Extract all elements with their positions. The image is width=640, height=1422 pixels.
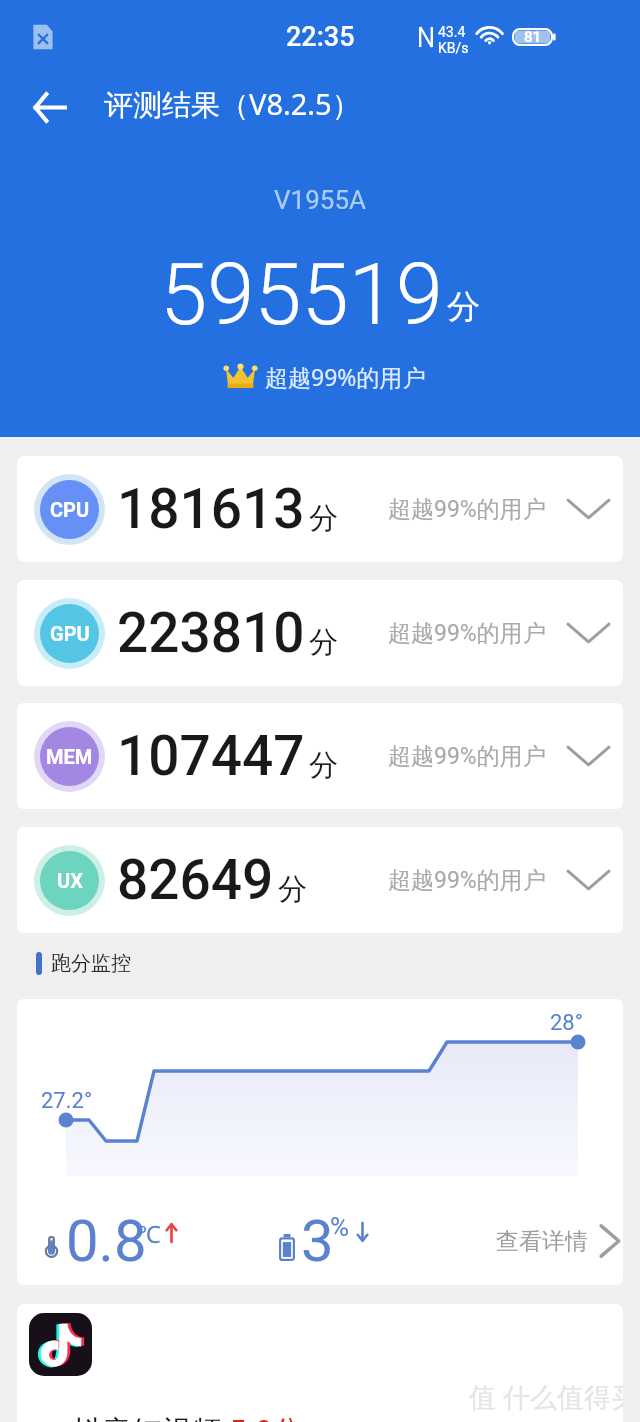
staticText: ℃ bbox=[137, 1217, 161, 1250]
staticText: 分 bbox=[309, 747, 338, 784]
staticText: 超越99%的用户 bbox=[388, 866, 546, 895]
staticText: 81 bbox=[524, 28, 542, 46]
button[interactable]: UX bbox=[17, 827, 623, 933]
staticText: 分 bbox=[309, 500, 338, 537]
button[interactable]: CPU bbox=[17, 456, 623, 562]
button[interactable]: MEM bbox=[17, 703, 623, 809]
staticText: V1955A bbox=[274, 185, 366, 215]
button[interactable]: 查看详情 bbox=[490, 1219, 623, 1263]
staticText: GPU bbox=[50, 622, 90, 645]
staticText: 超越99%的用户 bbox=[265, 361, 426, 392]
staticText: 查看详情 bbox=[496, 1227, 588, 1256]
staticText: CPU bbox=[50, 498, 90, 521]
staticText: 107447 bbox=[117, 724, 305, 788]
staticText: 28° bbox=[550, 1010, 583, 1036]
staticText: 82649 bbox=[117, 848, 274, 912]
staticText: 5.0分 bbox=[230, 1410, 303, 1422]
staticText: MEM bbox=[46, 745, 93, 768]
staticText: 超越99%的用户 bbox=[388, 495, 546, 524]
staticText: 3 bbox=[301, 1207, 334, 1275]
staticText: 分 bbox=[278, 871, 307, 908]
staticText: 27.2° bbox=[41, 1088, 93, 1114]
button[interactable]: Back bbox=[14, 72, 84, 142]
staticText: 181613 bbox=[117, 477, 305, 541]
staticText: 分 bbox=[309, 624, 338, 661]
staticText: KB/s bbox=[438, 40, 469, 56]
staticText: 22:35 bbox=[286, 21, 355, 53]
staticText: 595519 bbox=[160, 245, 443, 345]
staticText: 0.8 bbox=[66, 1207, 147, 1275]
staticText: 超越99%的用户 bbox=[388, 619, 546, 648]
staticText: 值 什么值得买 bbox=[469, 1378, 623, 1415]
button[interactable]: 抖音短视频 bbox=[17, 1304, 623, 1422]
staticText: 223810 bbox=[117, 601, 305, 665]
staticText: 跑分监控 bbox=[51, 951, 131, 975]
staticText: 分 bbox=[447, 286, 480, 328]
staticText: 评测结果（V8.2.5） bbox=[104, 84, 361, 124]
staticText: UX bbox=[57, 869, 83, 892]
staticText: % bbox=[330, 1212, 350, 1242]
staticText: 抖音短视频 bbox=[72, 1410, 230, 1422]
button[interactable]: GPU bbox=[17, 580, 623, 686]
staticText: 超越99%的用户 bbox=[388, 742, 546, 771]
staticText: 43.4 bbox=[438, 24, 466, 40]
